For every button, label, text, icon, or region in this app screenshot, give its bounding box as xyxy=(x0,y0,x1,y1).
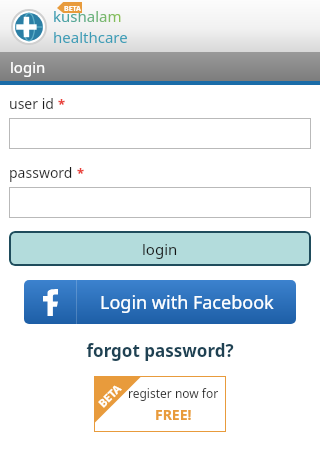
staticText: kushalam xyxy=(53,6,122,26)
staticText: FREE! xyxy=(155,405,192,424)
button[interactable]: User id input field xyxy=(9,118,311,149)
staticText: * xyxy=(58,95,66,113)
staticText: login xyxy=(142,239,178,259)
staticText: Login with Facebook xyxy=(100,290,274,315)
staticText: login xyxy=(10,57,46,77)
staticText: healthcare xyxy=(53,27,128,47)
button[interactable]: forgot password? xyxy=(9,339,311,362)
button[interactable]: login xyxy=(9,231,311,266)
staticText: password xyxy=(9,163,73,182)
staticText: user id xyxy=(9,94,54,113)
button[interactable]: Password input field xyxy=(9,187,311,218)
staticText: forgot password? xyxy=(86,339,234,362)
button[interactable]: kushalam healthcare xyxy=(12,6,128,47)
staticText: register now for xyxy=(128,385,219,401)
button[interactable]: register now for xyxy=(94,376,226,432)
staticText: BETA xyxy=(95,381,124,410)
staticText: BETA xyxy=(64,4,81,14)
staticText: * xyxy=(77,164,85,182)
button[interactable]: Login with Facebook xyxy=(24,280,296,324)
